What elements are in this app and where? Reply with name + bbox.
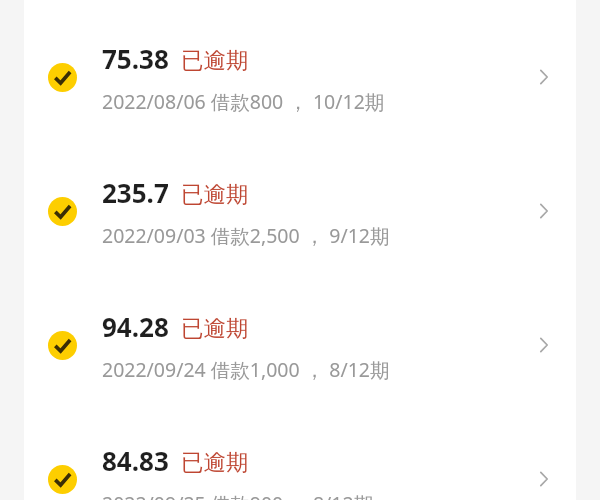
- button[interactable]: 235.7: [24, 144, 576, 278]
- staticText: 75.38: [102, 41, 169, 76]
- staticText: 2022/09/25 借款900 ， 8/12期: [102, 490, 374, 500]
- staticText: 94.28: [102, 309, 169, 344]
- button[interactable]: View repayment details: [532, 65, 556, 89]
- staticText: 235.7: [102, 175, 169, 210]
- staticText: 已逾期: [181, 314, 249, 342]
- staticText: 已逾期: [181, 180, 249, 208]
- staticText: 2022/09/03 借款2,500 ， 9/12期: [102, 222, 390, 249]
- button[interactable]: 75.38: [24, 10, 576, 144]
- staticText: 84.83: [102, 443, 169, 478]
- staticText: 已逾期: [181, 448, 249, 476]
- staticText: 2022/09/24 借款1,000 ， 8/12期: [102, 356, 390, 383]
- button[interactable]: View repayment details: [532, 199, 556, 223]
- button[interactable]: 84.83: [24, 412, 576, 500]
- button[interactable]: View repayment details: [532, 467, 556, 491]
- staticText: 已逾期: [181, 46, 249, 74]
- staticText: 2022/08/06 借款800 ， 10/12期: [102, 88, 385, 115]
- button[interactable]: 94.28: [24, 278, 576, 412]
- button[interactable]: View repayment details: [532, 333, 556, 357]
